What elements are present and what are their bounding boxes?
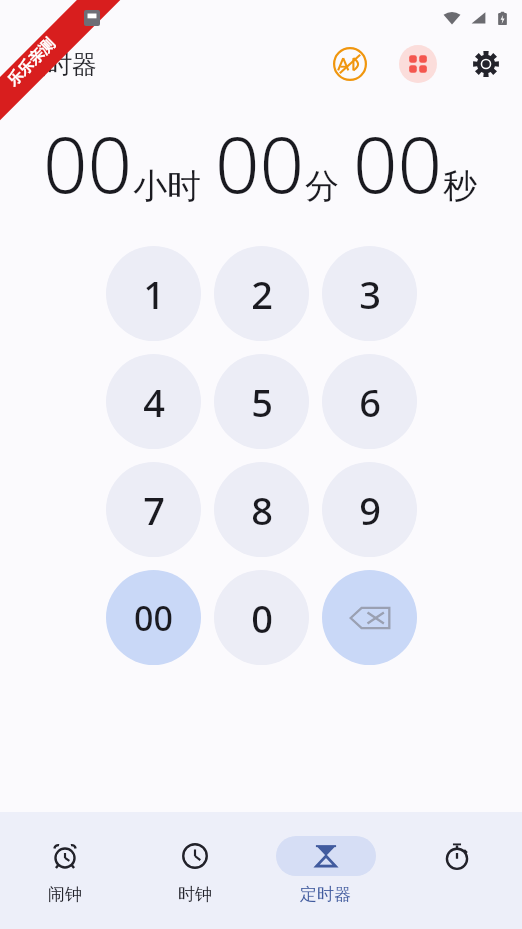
staticText: 时钟 — [178, 884, 212, 905]
staticText: 定时器 — [300, 884, 351, 905]
staticText: 秒 — [443, 165, 477, 208]
button[interactable]: Backspace — [322, 570, 417, 665]
button[interactable]: Settings — [466, 44, 506, 84]
button[interactable]: 00 — [106, 570, 201, 665]
button[interactable]: 6 — [322, 354, 417, 449]
staticText: 00 — [43, 110, 133, 216]
staticText: 1 — [143, 268, 165, 320]
button[interactable]: 定时器 — [260, 812, 391, 929]
button[interactable]: 闹钟 — [0, 812, 130, 929]
button[interactable]: Remove ads — [330, 44, 370, 84]
button[interactable]: 4 — [106, 354, 201, 449]
staticText: 3 — [359, 268, 381, 320]
staticText: 乐乐亲测 — [3, 34, 59, 90]
staticText: 8 — [251, 484, 273, 536]
staticText: 00 — [134, 595, 173, 641]
staticText: 9 — [359, 484, 381, 536]
staticText: 6 — [359, 376, 381, 428]
button[interactable]: 5 — [214, 354, 309, 449]
button[interactable]: 8 — [214, 462, 309, 557]
staticText: 定时器 — [22, 49, 97, 80]
staticText: 00 — [353, 110, 443, 216]
button[interactable]: 3 — [322, 246, 417, 341]
button[interactable]: 时钟 — [130, 812, 260, 929]
staticText: 小时 — [133, 165, 201, 208]
button[interactable]: 2 — [214, 246, 309, 341]
button[interactable]: 0 — [214, 570, 309, 665]
staticText: 2 — [251, 268, 273, 320]
staticText: 4 — [143, 376, 165, 428]
staticText: 00 — [215, 110, 305, 216]
staticText: 闹钟 — [48, 884, 82, 905]
button[interactable]: More apps — [398, 44, 438, 84]
staticText: 0 — [251, 592, 273, 644]
button[interactable]: 9 — [322, 462, 417, 557]
button[interactable]: Stopwatch — [391, 812, 522, 929]
button[interactable]: 7 — [106, 462, 201, 557]
staticText: 7 — [143, 484, 165, 536]
staticText: 5 — [251, 376, 273, 428]
button[interactable]: 1 — [106, 246, 201, 341]
staticText: 分 — [305, 165, 339, 208]
